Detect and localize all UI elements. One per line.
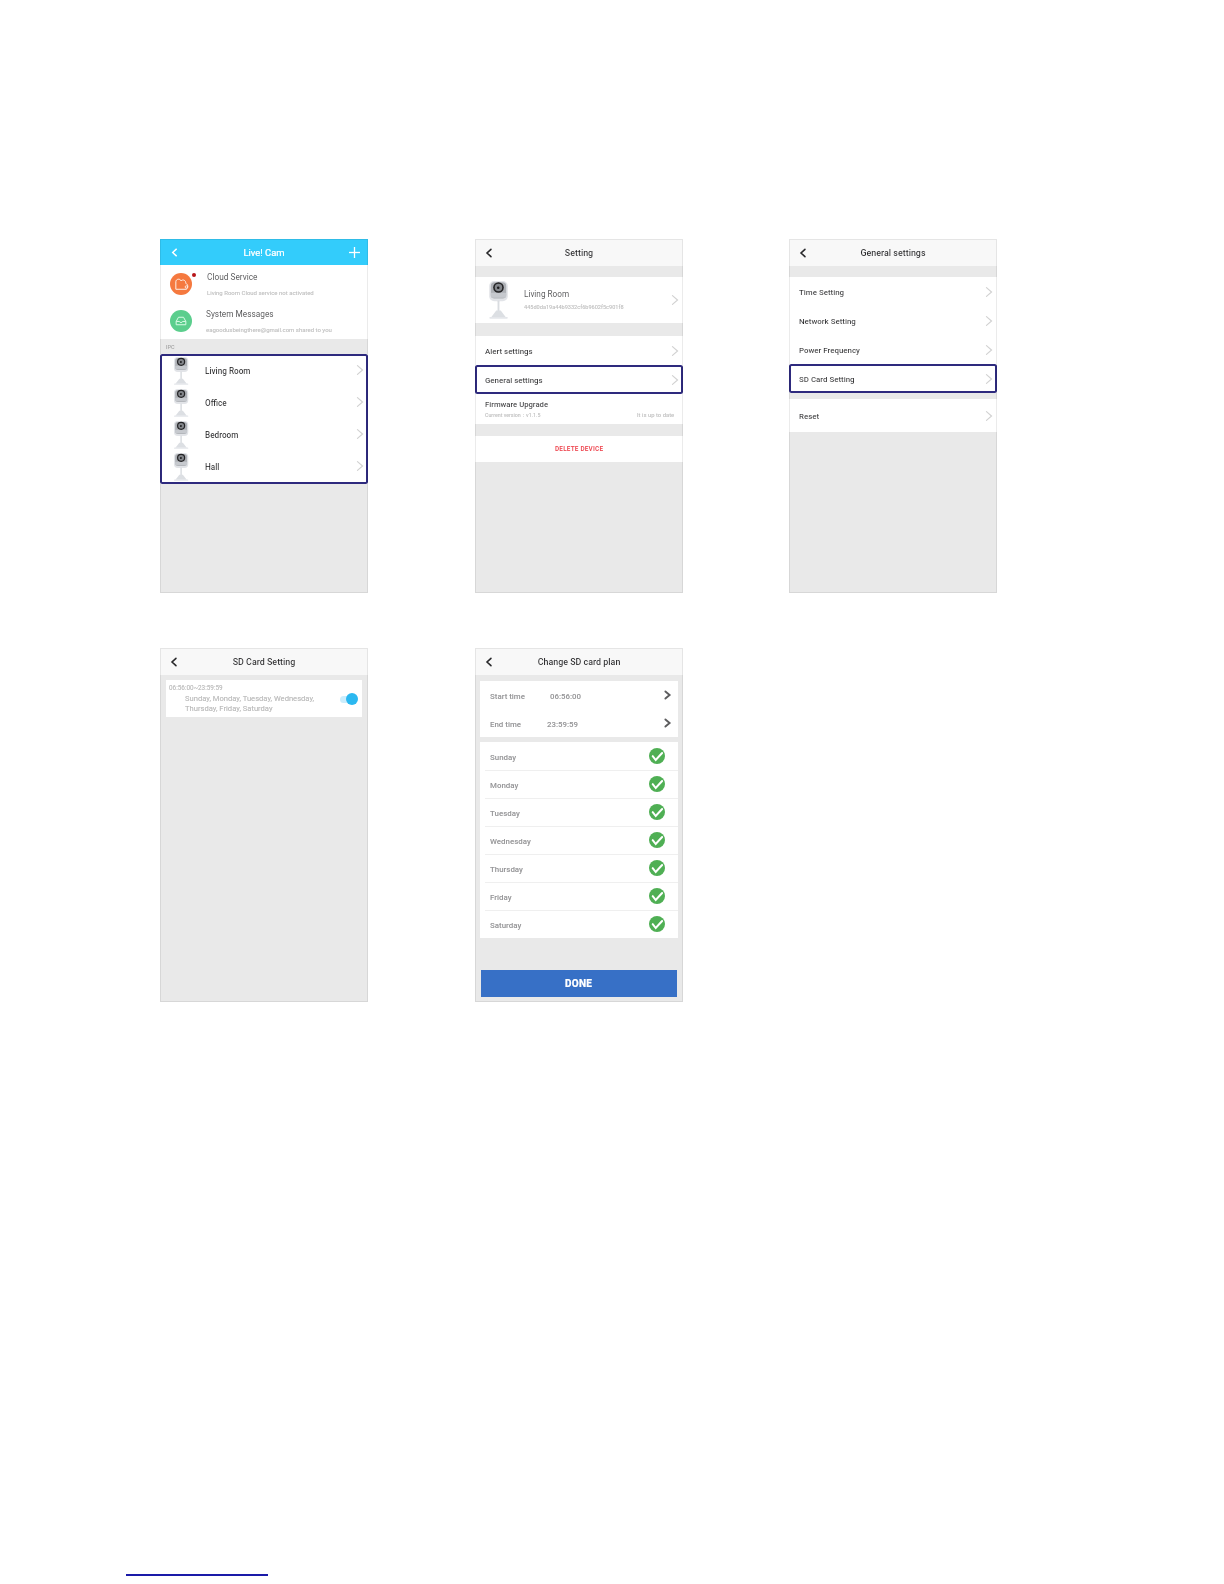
button[interactable]: Sunday (480, 742, 678, 770)
staticText: Living Room Cloud service not activated (207, 289, 314, 296)
staticText: Thursday (490, 865, 523, 874)
staticText: Living Room (524, 289, 570, 299)
staticText: Living Room (205, 366, 251, 376)
staticText: Network Setting (799, 317, 856, 326)
staticText: Hall (205, 462, 220, 472)
button[interactable]: General settings (475, 365, 683, 394)
button[interactable]: Monday (480, 770, 678, 798)
staticText: 06:56:00 (550, 692, 582, 701)
staticText: Alert settings (485, 347, 533, 356)
staticText: General settings (816, 248, 970, 258)
staticText: Sunday (490, 753, 517, 762)
staticText: Start time (490, 692, 525, 701)
button[interactable]: Alert settings (475, 336, 683, 365)
staticText: General settings (485, 376, 543, 385)
staticText: Wednesday (490, 837, 531, 846)
staticText: Change SD card plan (502, 657, 656, 667)
button[interactable]: Firmware Upgrade (475, 394, 683, 424)
staticText: It is up to date (637, 412, 675, 419)
button[interactable]: Wednesday (480, 826, 678, 854)
button[interactable]: Back (160, 648, 187, 675)
staticText: Live! Cam (188, 247, 340, 258)
staticText: DELETE DEVICE (555, 445, 604, 453)
button[interactable]: Office (160, 386, 368, 418)
button[interactable]: Tuesday (480, 798, 678, 826)
button[interactable]: DONE (481, 970, 677, 997)
staticText: Reset (799, 412, 820, 421)
staticText: End time (490, 720, 522, 729)
staticText: Saturday (490, 921, 522, 930)
button[interactable]: Add device (340, 239, 368, 265)
staticText: 23:59:59 (547, 720, 579, 729)
button[interactable]: Back (475, 239, 502, 266)
staticText: Friday (490, 893, 512, 902)
button[interactable]: Power Frequency (789, 335, 997, 364)
staticText: Time Setting (799, 288, 845, 297)
button[interactable]: Time Setting (789, 277, 997, 306)
button[interactable]: Network Setting (789, 306, 997, 335)
button[interactable]: Bedroom (160, 418, 368, 450)
button[interactable]: Saturday (480, 910, 678, 938)
staticText: 445d0da19a44b9332cf6b9602f5c901f8 (524, 304, 624, 311)
staticText: Current version：v1.1.5 (485, 412, 541, 419)
staticText: IPC (166, 344, 175, 350)
staticText: 06:56:00~23:59:59 (169, 684, 223, 692)
staticText: Firmware Upgrade (485, 400, 549, 409)
staticText: SD Card Setting (187, 657, 341, 667)
staticText: DONE (565, 978, 593, 990)
staticText: SD Card Setting (799, 375, 855, 384)
button[interactable]: Start time (480, 681, 678, 709)
button[interactable]: System Messages (160, 302, 368, 339)
button[interactable]: Hall (160, 450, 368, 482)
staticText: Office (205, 398, 227, 408)
button[interactable]: DELETE DEVICE (475, 436, 683, 462)
staticText: Tuesday (490, 809, 520, 818)
button[interactable]: Reset (789, 399, 997, 432)
button[interactable]: Back (160, 239, 188, 265)
button[interactable]: Friday (480, 882, 678, 910)
button[interactable]: Back (789, 239, 816, 266)
staticText: Bedroom (205, 430, 239, 440)
button[interactable]: End time (480, 709, 678, 737)
staticText: Power Frequency (799, 346, 860, 355)
staticText: eagoodusbeingthere@gmail.com shared to y… (206, 326, 332, 333)
staticText: Sunday, Monday, Tuesday, Wednesday, Thur… (185, 694, 318, 713)
staticText: Monday (490, 781, 519, 790)
button[interactable]: Thursday (480, 854, 678, 882)
button[interactable]: Cloud Service (160, 265, 368, 302)
button[interactable]: 06:56:00~23:59:59 (166, 680, 362, 717)
button[interactable]: Living Room (160, 354, 368, 386)
staticText: System Messages (206, 309, 274, 319)
staticText: Cloud Service (207, 272, 258, 282)
staticText: Setting (502, 248, 656, 258)
button[interactable]: Back (475, 648, 502, 675)
button[interactable]: Living Room (475, 277, 683, 323)
button[interactable]: SD Card Setting (789, 364, 997, 393)
